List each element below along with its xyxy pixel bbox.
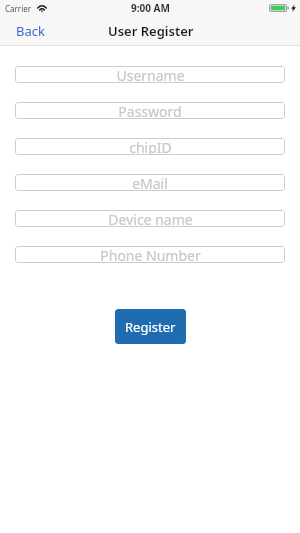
other: Wi-Fi signal	[37, 5, 47, 12]
other: Charging	[291, 4, 296, 12]
staticText: Password	[118, 102, 182, 119]
staticText: chipID	[129, 138, 172, 155]
button[interactable]: chipID	[15, 138, 285, 155]
button[interactable]: Register	[115, 309, 186, 344]
staticText: Carrier	[5, 3, 32, 14]
button[interactable]: Username	[15, 66, 285, 83]
staticText: Back	[16, 22, 45, 39]
button[interactable]: Back	[0, 16, 61, 45]
button[interactable]: Device name	[15, 210, 285, 227]
other: Battery full	[269, 4, 289, 12]
staticText: Phone Number	[100, 246, 201, 263]
staticText: User Register	[108, 22, 194, 40]
staticText: Username	[116, 66, 185, 83]
button[interactable]: Password	[15, 102, 285, 119]
button[interactable]: Phone Number	[15, 246, 285, 263]
staticText: eMail	[132, 174, 168, 191]
staticText: Register	[125, 318, 176, 336]
staticText: Device name	[108, 210, 193, 227]
staticText: 9:00 AM	[131, 1, 170, 15]
button[interactable]: eMail	[15, 174, 285, 191]
